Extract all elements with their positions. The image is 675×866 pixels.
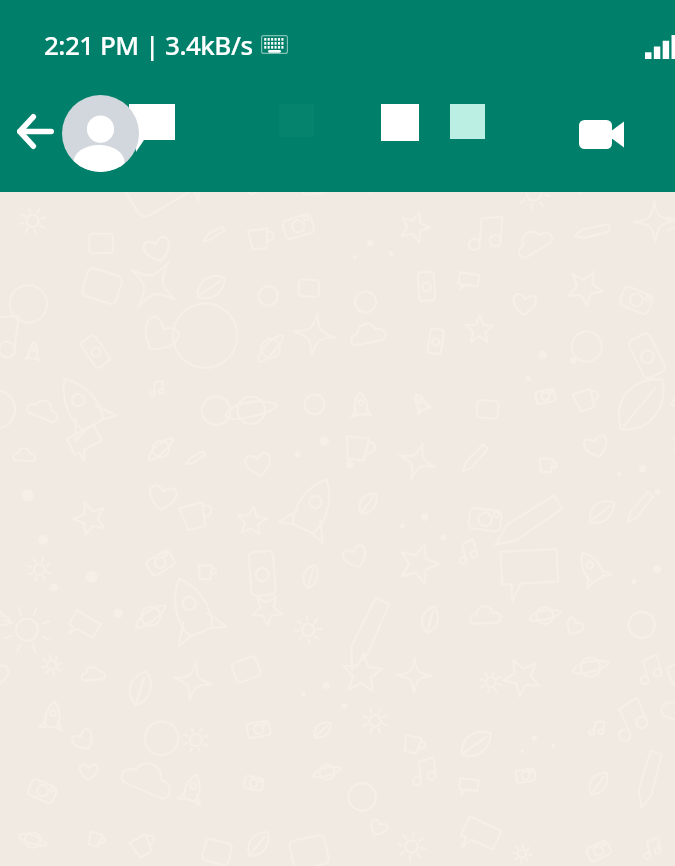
button[interactable]: Contact name	[129, 104, 179, 162]
staticText: 2:21 PM | 3.4kB/s	[44, 27, 253, 62]
button[interactable]: Video call	[563, 98, 639, 170]
button[interactable]: Back	[0, 96, 70, 166]
button[interactable]: Profile photo	[62, 95, 139, 172]
